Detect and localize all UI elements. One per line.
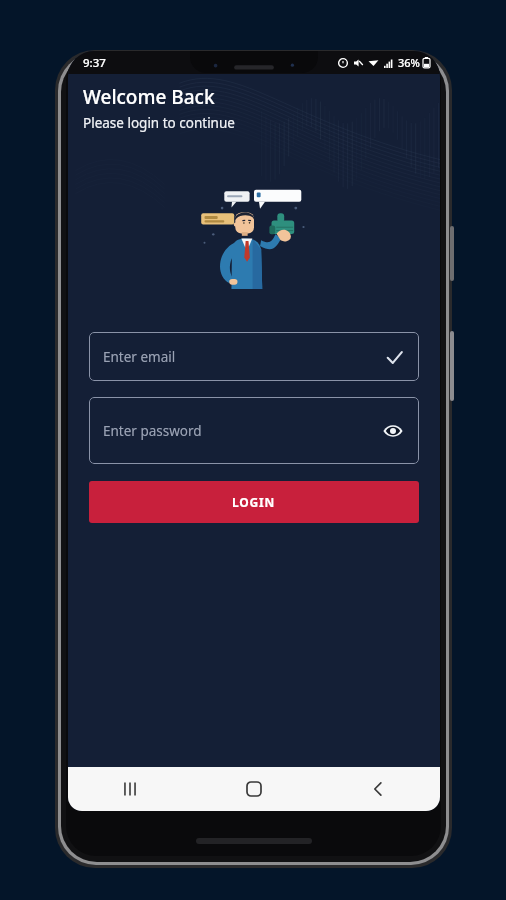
button[interactable]: LOGIN xyxy=(89,481,419,523)
staticText: Enter password xyxy=(103,422,202,440)
button[interactable]: Recent apps xyxy=(68,767,192,811)
staticText: LOGIN xyxy=(232,494,276,510)
button[interactable]: Enter password xyxy=(89,397,419,464)
button[interactable]: Enter email xyxy=(89,332,419,381)
button[interactable]: Home xyxy=(192,767,316,811)
staticText: Welcome Back xyxy=(83,84,215,110)
staticText: 36% xyxy=(398,55,420,70)
staticText: Please login to continue xyxy=(83,114,235,132)
button[interactable]: Show password xyxy=(381,419,405,443)
button[interactable]: Back xyxy=(316,767,440,811)
staticText: Enter email xyxy=(103,348,176,366)
other: Email valid xyxy=(383,346,405,368)
staticText: 9:37 xyxy=(83,55,106,71)
